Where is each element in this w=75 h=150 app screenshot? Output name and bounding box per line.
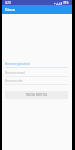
staticText: INIZIA PARTITA bbox=[26, 93, 48, 97]
staticText: 3:29 bbox=[5, 1, 11, 5]
button[interactable]: Numero giocatori bbox=[5, 62, 68, 71]
staticText: Numero vite bbox=[5, 79, 23, 83]
button[interactable]: Numero vite bbox=[5, 79, 68, 88]
staticText: 78% bbox=[63, 1, 69, 5]
staticText: Gioco bbox=[5, 7, 15, 12]
button[interactable]: INIZIA PARTITA bbox=[5, 91, 68, 99]
other: Status icons bbox=[54, 2, 62, 5]
button[interactable]: Numero mani bbox=[5, 71, 68, 80]
staticText: Numero mani bbox=[5, 71, 25, 75]
staticText: Numero giocatori bbox=[5, 62, 30, 66]
